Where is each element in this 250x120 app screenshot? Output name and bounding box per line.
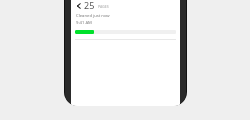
staticText: Cleaned just now xyxy=(76,13,110,19)
button[interactable]: Back xyxy=(75,0,176,11)
staticText: PAGES xyxy=(98,4,109,9)
staticText: 9:41 AM xyxy=(76,20,92,26)
button[interactable]: Back xyxy=(75,1,82,11)
button[interactable] xyxy=(75,30,176,34)
staticText: 25 xyxy=(84,0,95,11)
